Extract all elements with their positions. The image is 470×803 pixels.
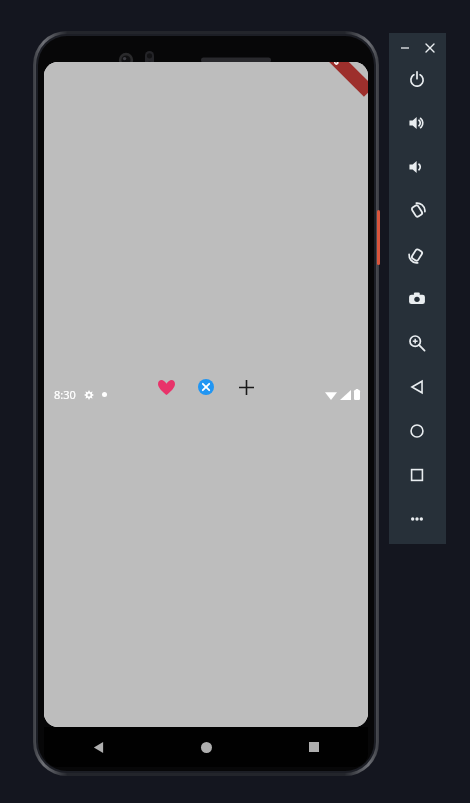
button[interactable]: Rotate right bbox=[401, 239, 433, 271]
staticText: DEBUG bbox=[316, 62, 343, 67]
button[interactable]: Screenshot bbox=[401, 283, 433, 315]
button[interactable]: Zoom bbox=[401, 327, 433, 359]
button[interactable]: Recents bbox=[260, 727, 368, 767]
button[interactable]: Add bbox=[229, 370, 263, 404]
button[interactable]: Recents bbox=[401, 459, 433, 491]
button[interactable]: More bbox=[401, 503, 433, 535]
button[interactable]: Volume down bbox=[401, 151, 433, 183]
button[interactable]: Volume up bbox=[401, 107, 433, 139]
button[interactable]: Rotate left bbox=[401, 195, 433, 227]
button[interactable]: Back bbox=[44, 727, 152, 767]
button[interactable]: Home bbox=[401, 415, 433, 447]
button[interactable]: Favorite bbox=[149, 370, 183, 404]
staticText: 8:30 bbox=[54, 387, 76, 402]
button[interactable]: Back bbox=[401, 371, 433, 403]
button[interactable]: Power bbox=[401, 63, 433, 95]
button[interactable]: Minimize bbox=[397, 41, 413, 55]
button[interactable]: Home bbox=[152, 727, 260, 767]
button[interactable]: Cancel bbox=[189, 370, 223, 404]
button[interactable]: Close bbox=[422, 41, 438, 55]
